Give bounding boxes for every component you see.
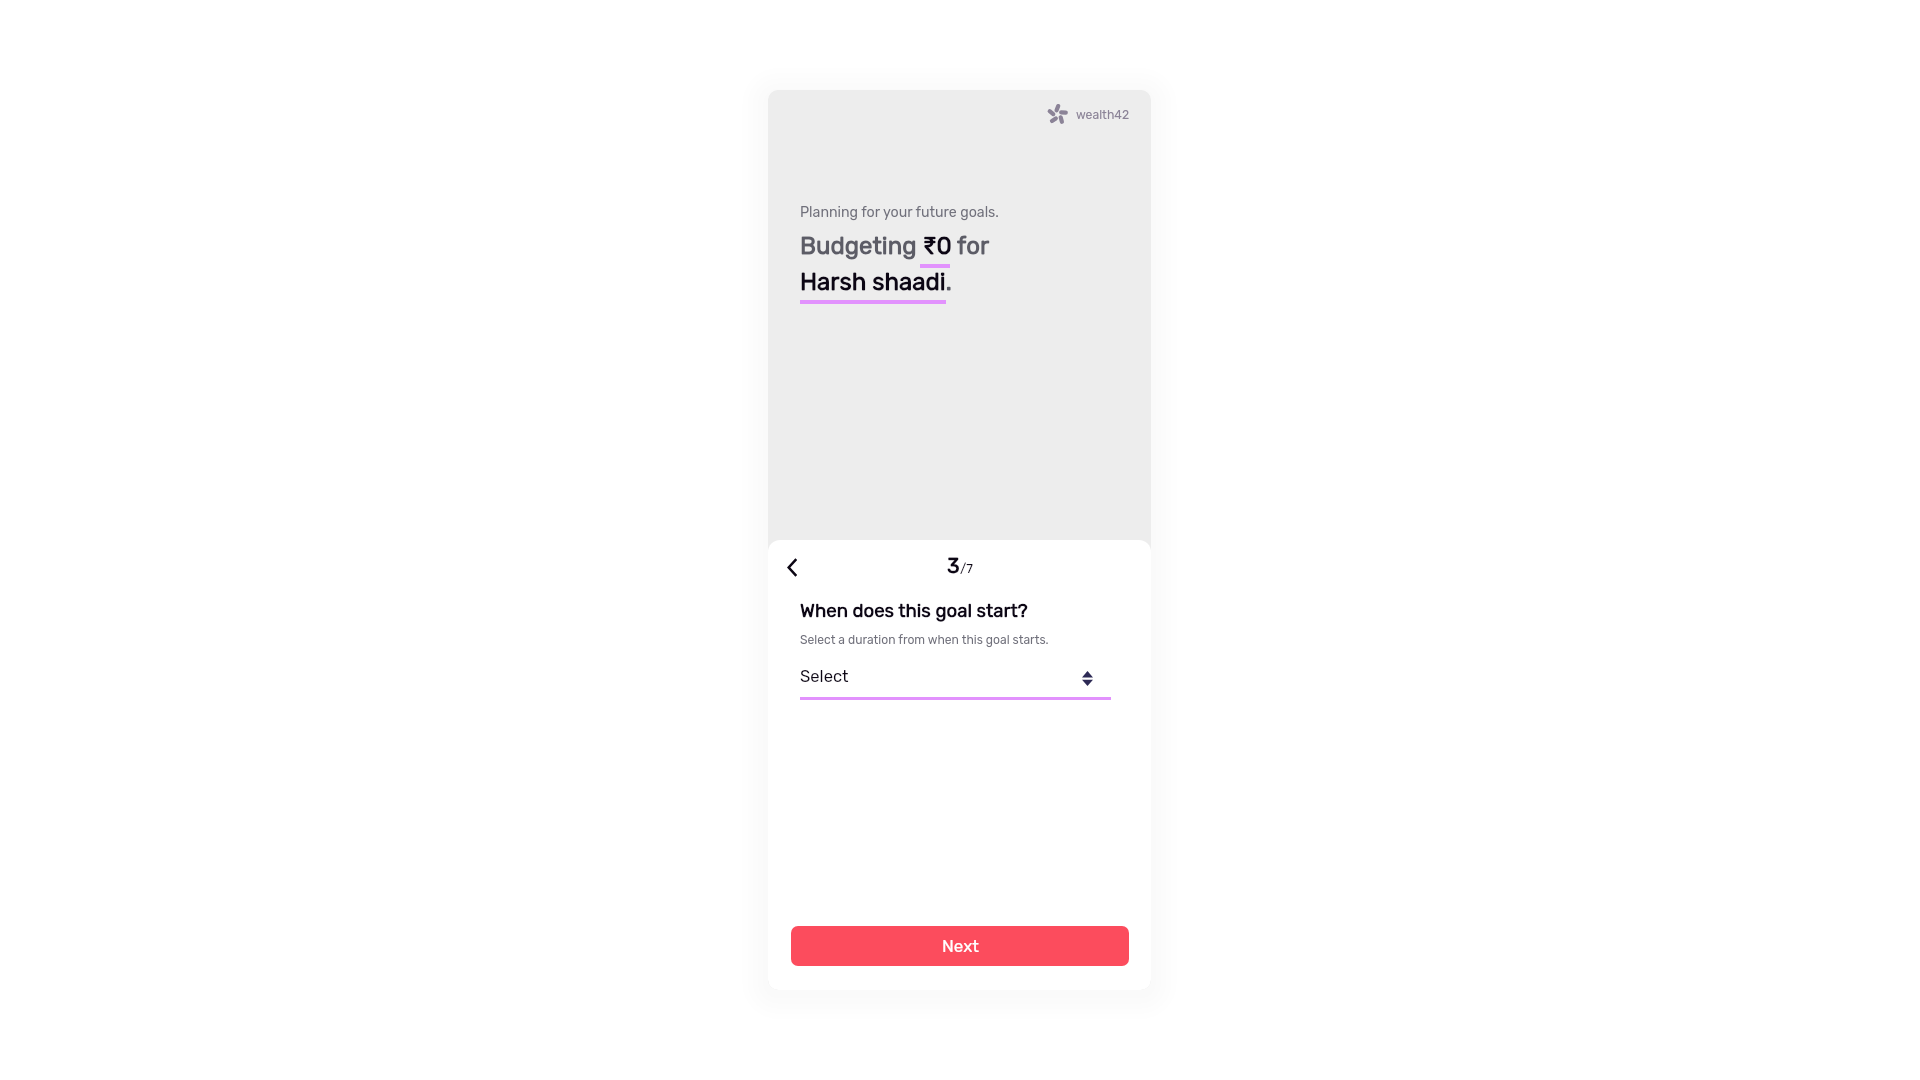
staticText: Select a duration from when this goal st… xyxy=(800,633,1049,647)
button[interactable]: Next xyxy=(791,926,1129,966)
staticText: Harsh shaadi. xyxy=(800,268,952,296)
button[interactable]: Select xyxy=(800,664,1111,700)
button[interactable]: wealth42 home xyxy=(1047,104,1130,125)
button[interactable]: Back xyxy=(775,550,809,584)
staticText: 3 xyxy=(947,553,960,578)
staticText: /7 xyxy=(960,561,973,576)
staticText: Select xyxy=(800,666,849,686)
staticText: Next xyxy=(942,936,979,956)
staticText: wealth42 xyxy=(1076,108,1130,122)
staticText: Budgeting ₹0 for xyxy=(800,232,990,260)
staticText: When does this goal start? xyxy=(800,600,1028,622)
staticText: Planning for your future goals. xyxy=(800,204,999,221)
